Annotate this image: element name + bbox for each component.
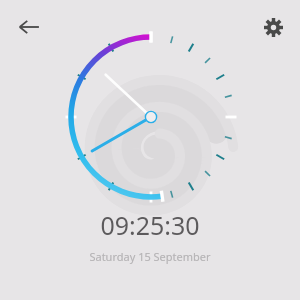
staticText: 09:25:30 [100,208,200,242]
button[interactable]: Back [10,8,48,46]
staticText: Saturday 15 September [89,249,211,264]
button[interactable]: Settings [254,8,292,46]
